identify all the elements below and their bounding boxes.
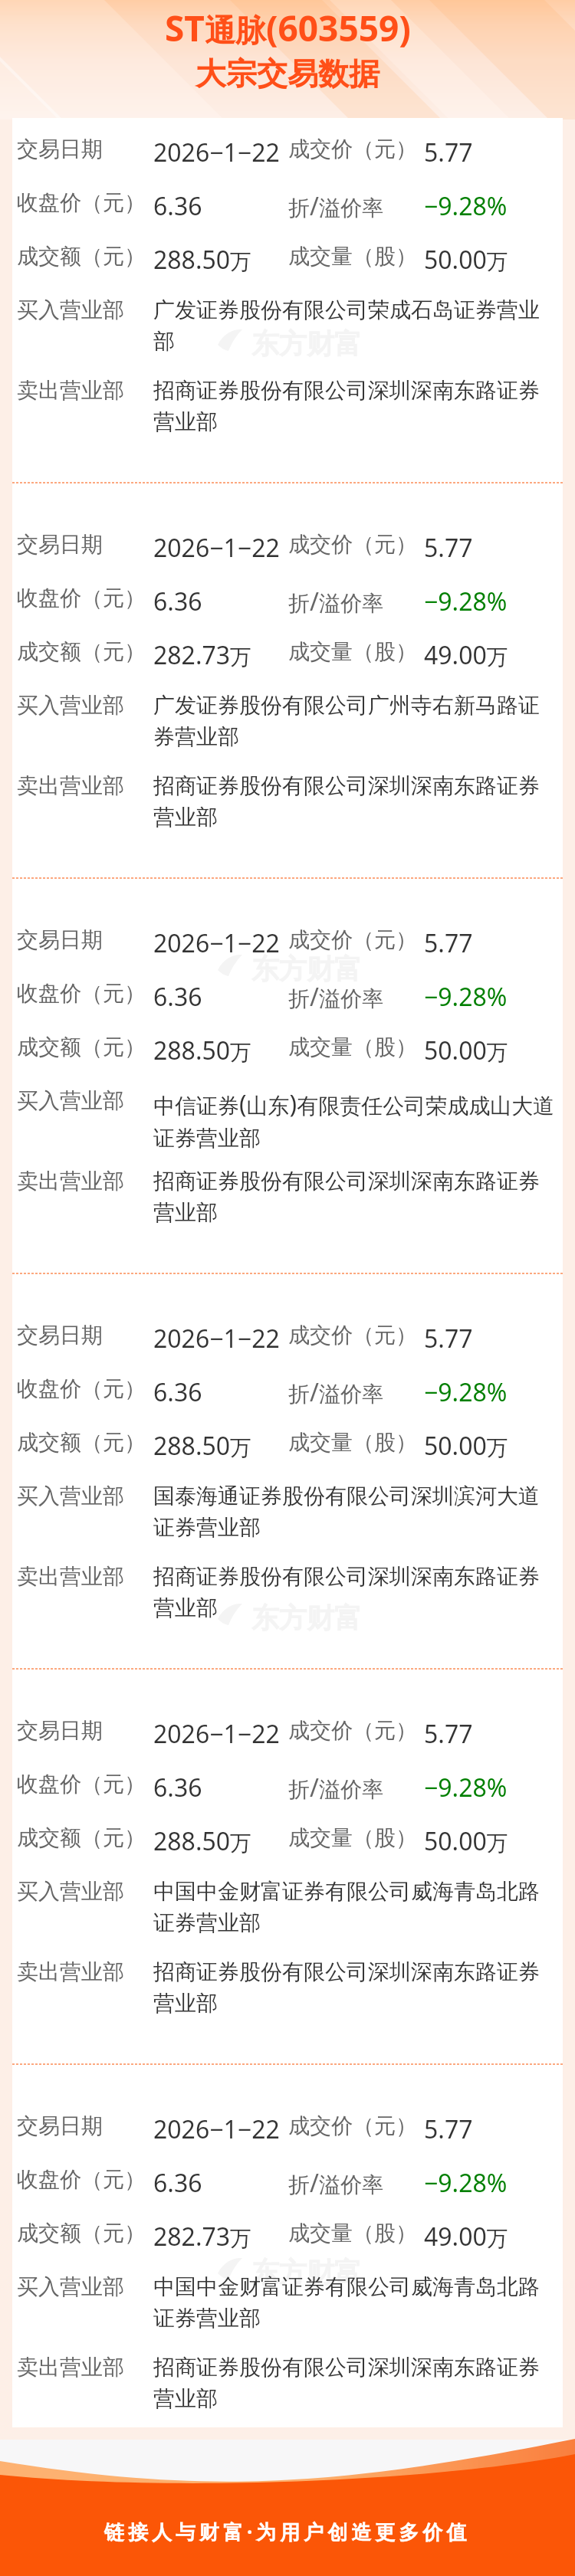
staticText: 288.50万 [153,243,252,277]
staticText: 东方财富 [251,952,362,986]
staticText: 成交额（元） [17,1034,146,1060]
staticText: 成交量（股） [288,1429,417,1456]
staticText: 50.00万 [424,243,508,277]
staticText: 2026−1−22 [153,1717,280,1751]
staticText: 折/溢价率 [288,1771,383,1804]
staticText: 中国中金财富证券有限公司威海青岛北路证券营业部 [153,2273,557,2333]
staticText: 交易日期 [17,926,103,953]
staticText: 成交量（股） [288,2220,417,2247]
staticText: 折/溢价率 [288,585,383,618]
staticText: 广发证券股份有限公司广州寺右新马路证券营业部 [153,692,557,752]
staticText: 卖出营业部 [17,2354,124,2381]
staticText: 链接人与财富·为用户创造更多价值 [104,2518,471,2545]
staticText: 东方财富 [251,326,362,361]
staticText: 49.00万 [424,2220,508,2253]
staticText: 成交价（元） [288,531,417,558]
staticText: 6.36 [153,2166,202,2200]
staticText: 广发证券股份有限公司荣成石岛证券营业部 [153,297,557,356]
staticText: 5.77 [424,136,473,169]
staticText: 东方财富 [251,1601,362,1635]
staticText: 成交价（元） [288,926,417,953]
staticText: 招商证券股份有限公司深圳深南东路证券营业部 [153,772,557,832]
staticText: 买入营业部 [17,2273,124,2300]
staticText: 收盘价（元） [17,2166,146,2193]
staticText: 招商证券股份有限公司深圳深南东路证券营业部 [153,377,557,437]
staticText: 2026−1−22 [153,2112,280,2146]
staticText: 成交量（股） [288,1824,417,1851]
staticText: 50.00万 [424,1824,508,1858]
staticText: 交易日期 [17,2112,103,2139]
staticText: 288.50万 [153,1034,252,1067]
staticText: 交易日期 [17,136,103,162]
staticText: 50.00万 [424,1034,508,1067]
staticText: 折/溢价率 [288,189,383,223]
staticText: 6.36 [153,189,202,223]
staticText: 收盘价（元） [17,585,146,611]
staticText: −9.28% [424,980,508,1014]
staticText: 成交量（股） [288,243,417,270]
staticText: 5.77 [424,2112,473,2146]
staticText: 2026−1−22 [153,136,280,169]
staticText: 中国中金财富证券有限公司威海青岛北路证券营业部 [153,1878,557,1938]
staticText: 成交价（元） [288,1322,417,1349]
staticText: 6.36 [153,1375,202,1409]
staticText: 5.77 [424,926,473,960]
staticText: 6.36 [153,1771,202,1804]
staticText: 6.36 [153,980,202,1014]
staticText: 成交额（元） [17,638,146,665]
staticText: 288.50万 [153,1429,252,1463]
staticText: 中信证券(山东)有限责任公司荣成成山大道证券营业部 [153,1087,557,1153]
staticText: 成交价（元） [288,1717,417,1744]
staticText: 成交额（元） [17,1429,146,1456]
staticText: 东方财富 [251,2255,362,2289]
staticText: 招商证券股份有限公司深圳深南东路证券营业部 [153,2354,557,2414]
staticText: 折/溢价率 [288,980,383,1014]
staticText: 卖出营业部 [17,1958,124,1985]
staticText: 卖出营业部 [17,377,124,404]
staticText: 收盘价（元） [17,1375,146,1402]
staticText: 招商证券股份有限公司深圳深南东路证券营业部 [153,1958,557,2018]
staticText: 交易日期 [17,1717,103,1744]
staticText: ST通脉(603559) [165,4,411,52]
staticText: 成交额（元） [17,243,146,270]
staticText: 成交额（元） [17,2220,146,2247]
staticText: −9.28% [424,1771,508,1804]
staticText: 卖出营业部 [17,1168,124,1195]
staticText: 2026−1−22 [153,926,280,960]
staticText: 2026−1−22 [153,1322,280,1355]
staticText: 成交额（元） [17,1824,146,1851]
staticText: 5.77 [424,1322,473,1355]
staticText: −9.28% [424,2166,508,2200]
staticText: 买入营业部 [17,1087,124,1114]
staticText: 6.36 [153,585,202,618]
staticText: 282.73万 [153,2220,252,2253]
staticText: 交易日期 [17,531,103,558]
staticText: 买入营业部 [17,692,124,719]
staticText: 折/溢价率 [288,2166,383,2200]
staticText: 招商证券股份有限公司深圳深南东路证券营业部 [153,1168,557,1227]
staticText: 成交量（股） [288,1034,417,1060]
staticText: 买入营业部 [17,297,124,323]
staticText: 收盘价（元） [17,980,146,1007]
staticText: 折/溢价率 [288,1375,383,1409]
staticText: 288.50万 [153,1824,252,1858]
staticText: 大宗交易数据 [195,54,379,93]
staticText: 282.73万 [153,638,252,672]
staticText: 招商证券股份有限公司深圳深南东路证券营业部 [153,1563,557,1623]
staticText: 交易日期 [17,1322,103,1349]
staticText: −9.28% [424,1375,508,1409]
staticText: 5.77 [424,531,473,565]
staticText: 成交价（元） [288,2112,417,2139]
staticText: 50.00万 [424,1429,508,1463]
staticText: −9.28% [424,189,508,223]
staticText: 2026−1−22 [153,531,280,565]
staticText: 卖出营业部 [17,772,124,799]
staticText: 收盘价（元） [17,1771,146,1798]
staticText: 买入营业部 [17,1878,124,1905]
staticText: 成交价（元） [288,136,417,162]
staticText: 49.00万 [424,638,508,672]
staticText: 成交量（股） [288,638,417,665]
staticText: 国泰海通证券股份有限公司深圳滨河大道证券营业部 [153,1483,557,1542]
staticText: −9.28% [424,585,508,618]
staticText: 5.77 [424,1717,473,1751]
